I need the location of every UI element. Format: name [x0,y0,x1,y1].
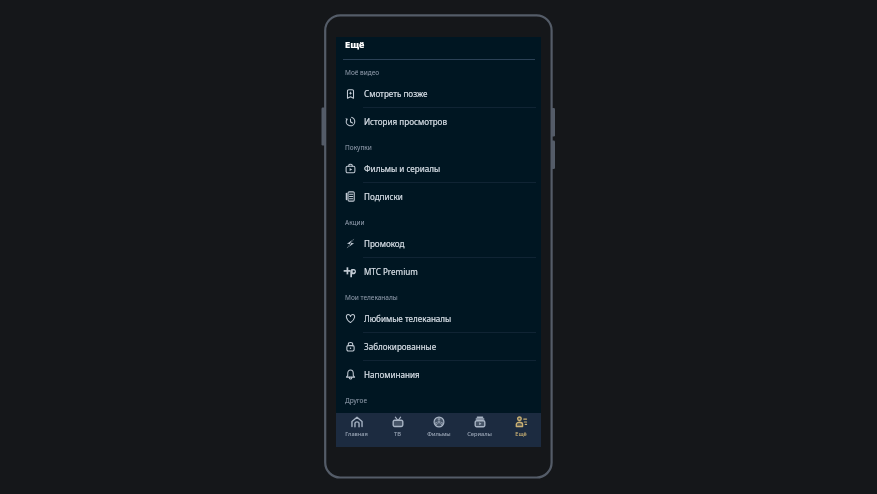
button[interactable]: Смотреть позже [336,80,541,108]
button[interactable]: Заблокированные [336,333,541,361]
button[interactable]: Ещё [500,413,541,447]
staticText: Ещё [345,38,365,51]
button[interactable]: История просмотров [336,108,541,135]
button[interactable]: Фильмы и сериалы [336,155,541,183]
staticText: Промокод [364,238,405,249]
staticText: История просмотров [364,116,447,127]
button[interactable]: Промокод [336,230,541,258]
staticText: Заблокированные [364,341,437,352]
staticText: Любимые телеканалы [364,313,452,324]
button[interactable]: Сериалы [459,413,500,447]
button[interactable]: Фильмы [418,413,459,447]
staticText: Моё видео [345,68,380,77]
button[interactable]: Главная [336,413,377,447]
staticText: Напоминания [364,369,420,380]
staticText: Мои телеканалы [345,293,398,302]
button[interactable]: Подписки [336,183,541,210]
staticText: Смотреть позже [364,88,428,99]
staticText: Подписки [364,191,403,202]
staticText: ТВ [394,430,401,438]
staticText: Другое [345,396,368,405]
staticText: Ещё [515,430,527,438]
staticText: Покупки [345,143,372,152]
staticText: Акции [345,218,365,227]
button[interactable]: Напоминания [336,361,541,388]
staticText: Сериалы [467,430,492,438]
button[interactable]: МТС Premium [336,258,541,285]
button[interactable]: ТВ [377,413,418,447]
staticText: МТС Premium [364,266,418,277]
button[interactable]: Любимые телеканалы [336,305,541,333]
staticText: Главная [345,430,368,438]
staticText: Фильмы [427,430,451,438]
staticText: Фильмы и сериалы [364,163,441,174]
